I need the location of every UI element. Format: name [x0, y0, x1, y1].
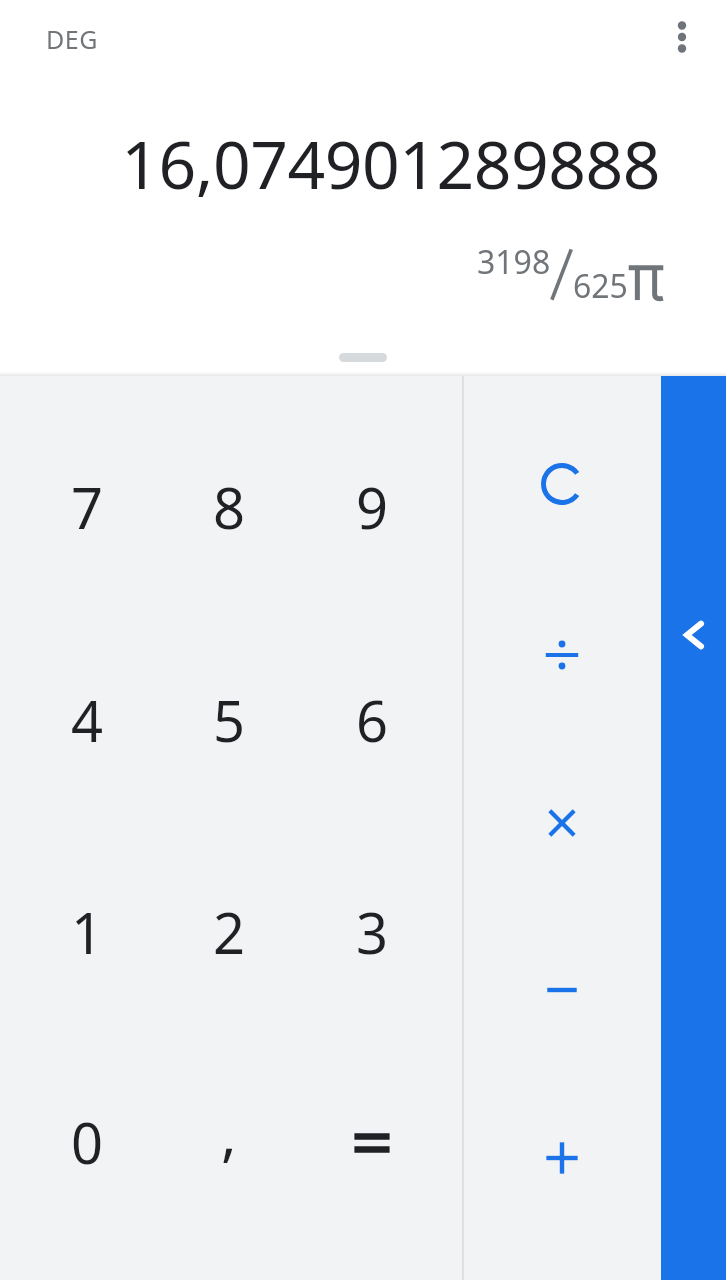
- staticText: 0: [71, 1104, 104, 1180]
- button[interactable]: Multiply: [464, 739, 660, 907]
- button[interactable]: 8: [158, 401, 300, 613]
- button[interactable]: DEG: [44, 20, 101, 58]
- button[interactable]: 2: [158, 826, 300, 1038]
- button[interactable]: [301, 1036, 443, 1248]
- staticText: 625: [573, 264, 628, 308]
- button[interactable]: 9: [301, 401, 443, 613]
- staticText: 16,074901289888: [0, 118, 660, 208]
- button[interactable]: More options: [657, 12, 707, 62]
- button[interactable]: Expand history: [339, 353, 387, 362]
- button[interactable]: Open advanced pad: [661, 376, 726, 1280]
- button[interactable]: Divide: [464, 571, 660, 739]
- button[interactable]: 5: [158, 614, 300, 826]
- staticText: ,: [221, 1093, 237, 1172]
- staticText: 1: [71, 894, 104, 970]
- button[interactable]: 3: [301, 826, 443, 1038]
- staticText: 2: [213, 894, 246, 970]
- button[interactable]: 7: [16, 401, 158, 613]
- button[interactable]: Clear: [464, 400, 660, 568]
- staticText: 5: [213, 682, 246, 758]
- staticText: 3: [356, 894, 389, 970]
- button[interactable]: ,: [158, 1036, 300, 1248]
- staticText: 4: [71, 682, 104, 758]
- staticText: DEG: [46, 22, 99, 56]
- staticText: 9: [356, 469, 389, 545]
- button[interactable]: 6: [301, 614, 443, 826]
- staticText: 8: [213, 469, 246, 545]
- button[interactable]: Subtract: [464, 906, 660, 1074]
- staticText: 6: [356, 682, 389, 758]
- button[interactable]: 1: [16, 826, 158, 1038]
- staticText: 3198: [477, 240, 551, 284]
- button[interactable]: 4: [16, 614, 158, 826]
- button[interactable]: Add: [464, 1074, 660, 1242]
- button[interactable]: 0: [16, 1036, 158, 1248]
- staticText: 7: [71, 469, 104, 545]
